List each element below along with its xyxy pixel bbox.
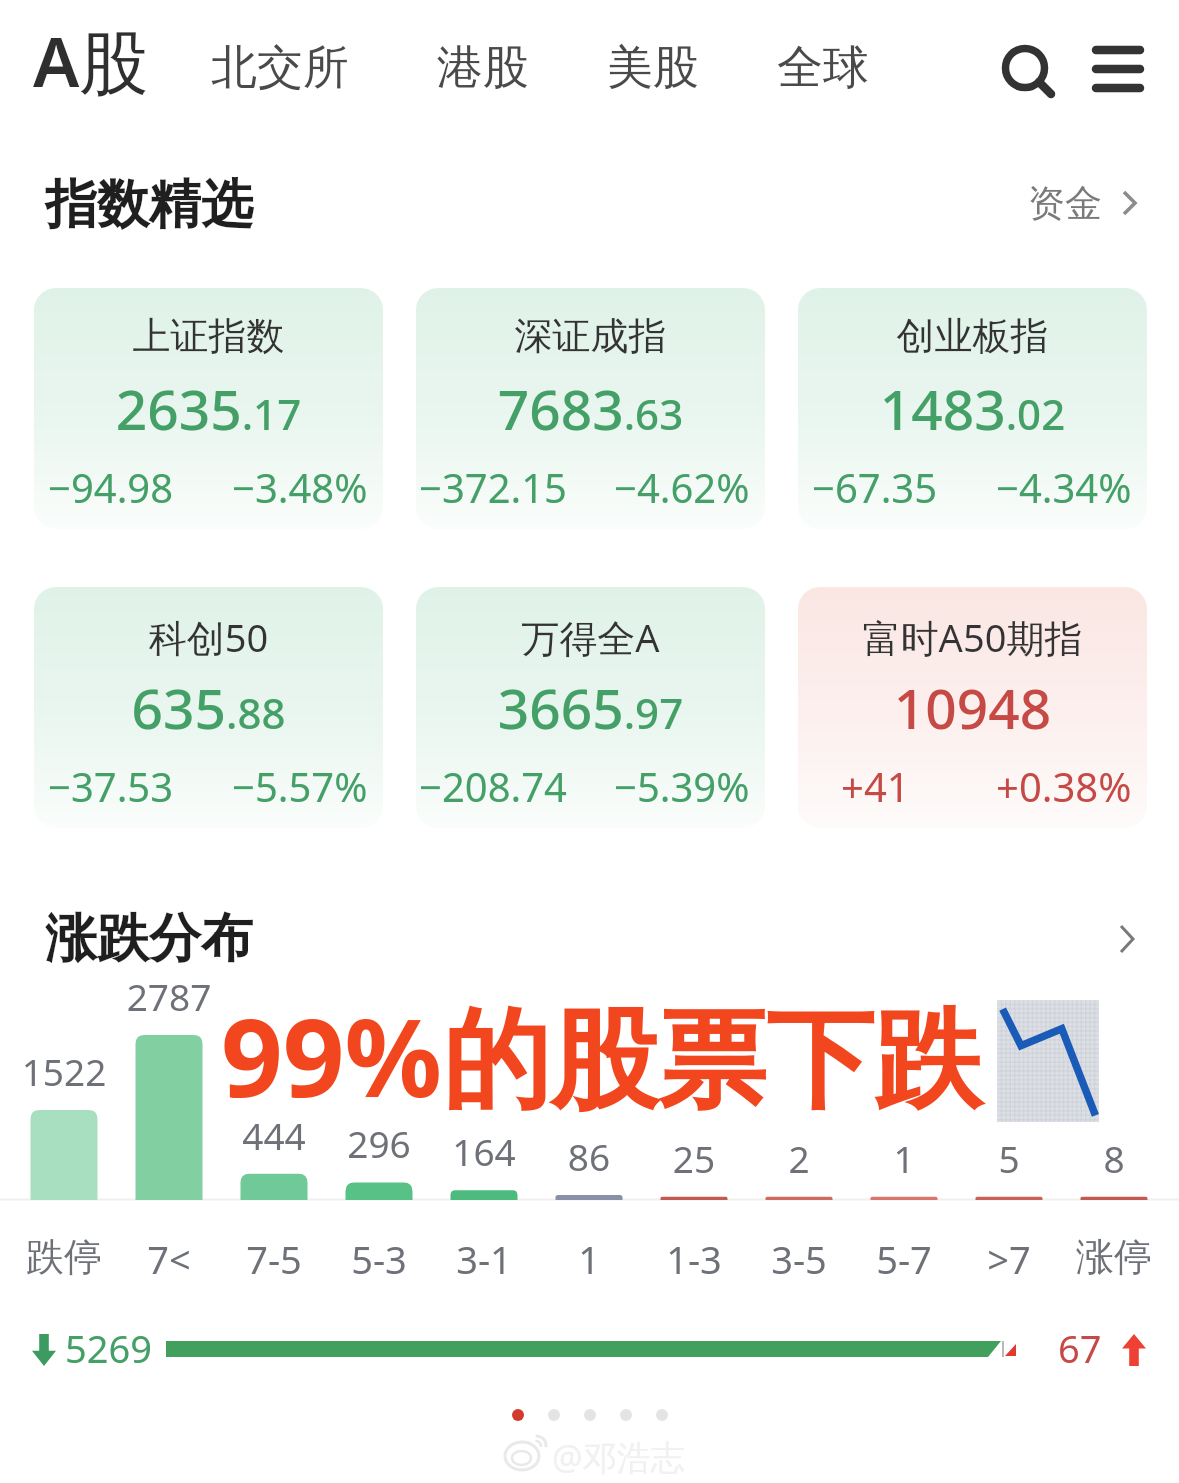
- staticText: −3.48%: [232, 460, 368, 514]
- staticText: 99%的股票下跌: [221, 986, 982, 1134]
- staticText: 99%的股票下跌: [217, 982, 978, 1130]
- staticText: 港股: [437, 39, 529, 97]
- staticText: 635.88: [34, 670, 383, 745]
- staticText: 1522: [4, 1046, 124, 1096]
- staticText: 北交所: [211, 39, 349, 97]
- staticText: 跌停: [4, 1233, 124, 1281]
- staticText: 富时A50期指: [798, 611, 1147, 663]
- staticText: 1483.02: [798, 371, 1147, 446]
- button[interactable]: 全球: [762, 12, 854, 110]
- staticText: 99%的股票下跌: [224, 985, 985, 1133]
- staticText: −5.57%: [232, 759, 368, 813]
- staticText: 164: [424, 1126, 544, 1176]
- staticText: 涨停: [1054, 1233, 1174, 1281]
- staticText: @邓浩志: [552, 1434, 685, 1480]
- staticText: 2787: [109, 971, 229, 1021]
- staticText: 5: [949, 1133, 1069, 1183]
- button[interactable]: 指数精选: [45, 172, 253, 238]
- button[interactable]: 资金: [1028, 180, 1102, 227]
- staticText: 86: [529, 1131, 649, 1181]
- button[interactable]: 科创50: [34, 587, 383, 828]
- staticText: 3-5: [739, 1233, 859, 1285]
- staticText: 1: [529, 1233, 649, 1285]
- staticText: 5-3: [319, 1233, 439, 1285]
- button[interactable]: Search: [995, 38, 1057, 100]
- button[interactable]: Menu: [1090, 44, 1146, 100]
- staticText: −208.74: [419, 759, 567, 813]
- staticText: −4.62%: [614, 460, 750, 514]
- button[interactable]: 深证成指: [416, 288, 765, 529]
- button[interactable]: Funds: [1118, 186, 1144, 220]
- button[interactable]: 美股: [592, 12, 684, 110]
- staticText: 99%的股票下跌: [221, 978, 982, 1126]
- staticText: −5.39%: [614, 759, 750, 813]
- button[interactable]: A股: [33, 13, 149, 107]
- staticText: −67.35: [812, 460, 938, 514]
- staticText: 深证成指: [416, 312, 765, 360]
- staticText: 3665.97: [416, 670, 765, 745]
- staticText: 1: [844, 1133, 964, 1183]
- staticText: 10948: [798, 670, 1147, 745]
- button[interactable]: 创业板指: [798, 288, 1147, 529]
- staticText: 2635.17: [34, 371, 383, 446]
- staticText: 8: [1054, 1133, 1174, 1183]
- staticText: +41: [841, 759, 910, 813]
- staticText: 5-7: [844, 1233, 964, 1285]
- button[interactable]: 上证指数: [34, 288, 383, 529]
- staticText: 67: [1058, 1322, 1102, 1374]
- staticText: 万得全A: [416, 611, 765, 663]
- staticText: 99%的股票下跌: [218, 979, 979, 1127]
- staticText: 创业板指: [798, 312, 1147, 360]
- staticText: 3-1: [424, 1233, 544, 1285]
- staticText: 7683.63: [416, 371, 765, 446]
- staticText: 2: [739, 1133, 859, 1183]
- staticText: 上证指数: [34, 312, 383, 360]
- staticText: 444: [214, 1110, 334, 1160]
- staticText: 7<: [109, 1233, 229, 1285]
- button[interactable]: 富时A50期指: [798, 587, 1147, 828]
- staticText: 科创50: [34, 611, 383, 663]
- staticText: −37.53: [48, 759, 174, 813]
- staticText: 99%的股票下跌: [218, 985, 979, 1133]
- staticText: 99%的股票下跌: [221, 982, 982, 1130]
- button[interactable]: More: [1112, 919, 1146, 959]
- button[interactable]: 北交所: [196, 12, 334, 110]
- staticText: −372.15: [419, 460, 567, 514]
- staticText: 7-5: [214, 1233, 334, 1285]
- staticText: 99%的股票下跌: [225, 982, 986, 1130]
- button[interactable]: 万得全A: [416, 587, 765, 828]
- staticText: 全球: [777, 39, 869, 97]
- button[interactable]: 涨跌分布: [45, 906, 253, 972]
- staticText: 1-3: [634, 1233, 754, 1285]
- staticText: 5269: [65, 1322, 152, 1374]
- staticText: −94.98: [48, 460, 174, 514]
- button[interactable]: 港股: [422, 12, 514, 110]
- staticText: +0.38%: [996, 759, 1132, 813]
- staticText: 296: [319, 1118, 439, 1168]
- staticText: 25: [634, 1133, 754, 1183]
- staticText: −4.34%: [996, 460, 1132, 514]
- staticText: 99%的股票下跌: [224, 979, 985, 1127]
- staticText: 美股: [607, 39, 699, 97]
- staticText: >7: [949, 1233, 1069, 1285]
